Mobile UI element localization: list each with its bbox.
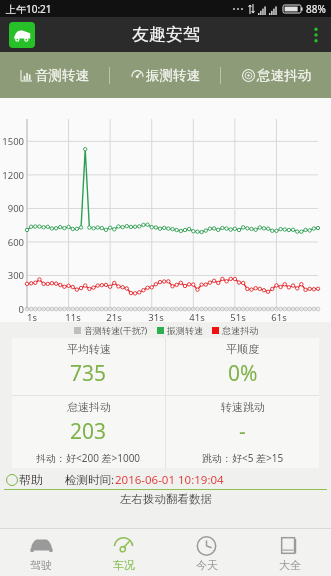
staticText: 0 <box>0 303 24 316</box>
staticText: 平均转速 <box>67 342 111 356</box>
button[interactable]: 帮助 <box>6 472 43 487</box>
staticText: 左右拨动翻看数据 <box>120 492 212 506</box>
staticText: 音测转速(干扰?) <box>84 324 148 336</box>
button[interactable]: 转速跳动 <box>166 396 319 468</box>
staticText: 51s <box>226 311 250 324</box>
staticText: 音测转速 <box>35 67 89 84</box>
staticText: 平顺度 <box>226 342 259 356</box>
staticText: 31s <box>144 311 168 324</box>
button[interactable]: 怠速抖动 <box>221 52 331 98</box>
staticText: 怠速抖动 <box>67 400 111 414</box>
staticText: 61s <box>267 311 291 324</box>
button[interactable]: 大全 <box>248 529 331 576</box>
staticText: 600 <box>0 236 24 249</box>
staticText: 900 <box>0 202 24 215</box>
staticText: 振测转速 <box>167 325 203 336</box>
button[interactable]: 驾驶 <box>0 529 82 576</box>
staticText: 41s <box>185 311 209 324</box>
button[interactable]: 怠速抖动 <box>12 396 165 468</box>
button[interactable]: App logo <box>9 22 35 48</box>
staticText: 上午10:21 <box>6 2 52 16</box>
button[interactable]: 音测转速 <box>0 52 109 98</box>
staticText: 11s <box>61 311 85 324</box>
staticText: 抖动：好<200 差>1000 <box>36 451 141 465</box>
staticText: 203 <box>70 417 107 446</box>
staticText: 怠速抖动 <box>257 67 311 84</box>
button[interactable]: 平均转速 <box>12 338 165 395</box>
staticText: 300 <box>0 269 24 282</box>
staticText: 0% <box>228 359 258 388</box>
staticText: 转速跳动 <box>221 400 265 414</box>
staticText: 振测转速 <box>146 67 200 84</box>
button[interactable]: 振测转速 <box>110 52 220 98</box>
staticText: 怠速抖动 <box>222 325 258 336</box>
staticText: 友趣安驾 <box>132 24 200 45</box>
staticText: 驾驶 <box>30 558 52 572</box>
staticText: 大全 <box>279 558 301 572</box>
staticText: 帮助 <box>19 472 43 487</box>
staticText: 88% <box>306 2 326 16</box>
staticText: 今天 <box>196 558 218 572</box>
staticText: - <box>239 417 246 446</box>
staticText: 1200 <box>0 169 24 182</box>
button[interactable]: 车况 <box>82 529 165 576</box>
staticText: 1500 <box>0 135 24 148</box>
staticText: 735 <box>70 359 107 388</box>
staticText: 1s <box>20 311 44 324</box>
staticText: 检测时间: <box>65 472 115 488</box>
button[interactable]: More options <box>301 17 331 52</box>
staticText: 车况 <box>113 558 135 572</box>
staticText: 2016-06-01 10:19:04 <box>115 472 224 488</box>
staticText: 21s <box>102 311 126 324</box>
button[interactable]: 今天 <box>165 529 248 576</box>
staticText: 跳动：好<5 差>15 <box>202 451 284 465</box>
button[interactable]: 平顺度 <box>166 338 319 395</box>
